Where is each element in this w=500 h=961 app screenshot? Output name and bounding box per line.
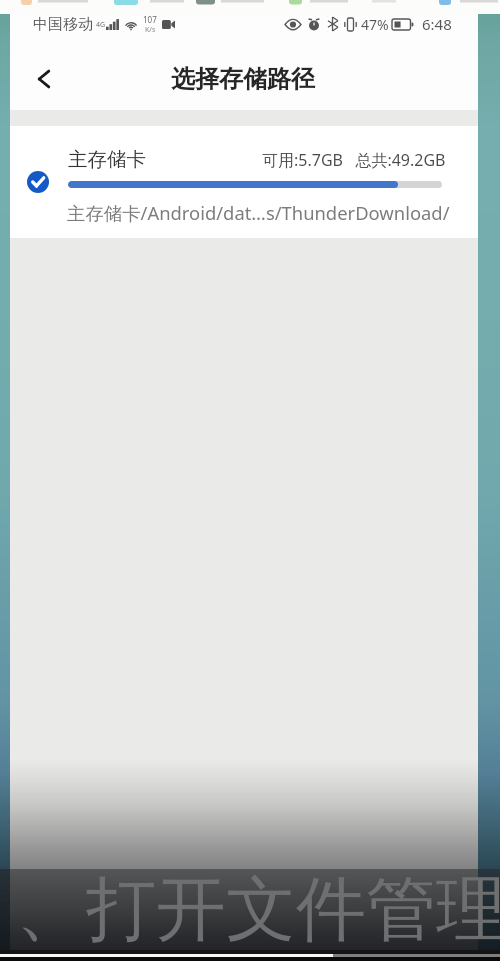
staticText: 中国移动 <box>33 15 93 34</box>
staticText: 4G <box>96 20 106 30</box>
staticText: 可用:5.7GB 总共:49.2GB <box>262 149 446 171</box>
staticText: K/s <box>145 25 156 35</box>
button[interactable]: Back <box>20 55 68 103</box>
staticText: 、打开文件管理 <box>16 866 500 954</box>
staticText: 选择存储路径 <box>171 64 315 94</box>
staticText: 47% <box>361 15 389 34</box>
staticText: 107 <box>143 14 157 25</box>
staticText: 主存储卡 <box>68 147 146 172</box>
staticText: 主存储卡/Android/dat…s/ThunderDownload/ <box>67 200 450 225</box>
staticText: 6:48 <box>422 14 452 34</box>
button[interactable]: 主存储卡 <box>10 126 478 238</box>
